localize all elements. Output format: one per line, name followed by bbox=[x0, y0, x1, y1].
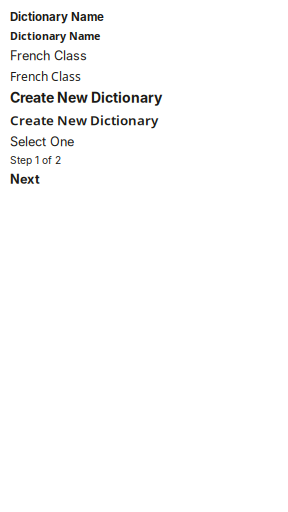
staticText: Select One bbox=[10, 134, 74, 149]
staticText: French Class bbox=[10, 48, 87, 63]
staticText: Dictionary Name bbox=[10, 29, 100, 43]
staticText: Dictionary Name bbox=[10, 10, 104, 24]
staticText: French Class bbox=[10, 68, 81, 84]
staticText: Next bbox=[10, 171, 40, 187]
staticText: Step 1 of 2 bbox=[10, 154, 61, 167]
staticText: Create New Dictionary bbox=[10, 89, 162, 106]
staticText: Create New Dictionary bbox=[10, 111, 158, 129]
